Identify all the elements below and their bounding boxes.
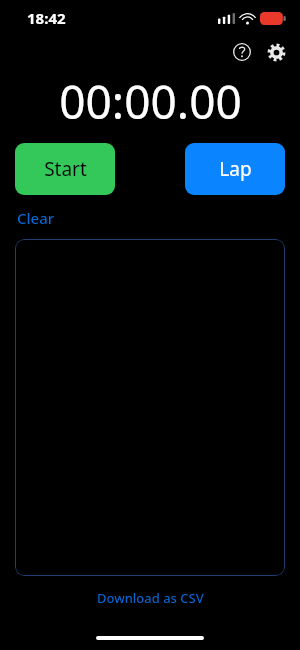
staticText: Download as CSV bbox=[97, 589, 204, 607]
staticText: Lap bbox=[219, 156, 252, 182]
button[interactable]: Clear bbox=[15, 206, 57, 230]
staticText: Clear bbox=[17, 208, 55, 228]
button[interactable]: Lap bbox=[185, 143, 285, 195]
button[interactable]: Start bbox=[15, 143, 115, 195]
button[interactable]: Help bbox=[228, 38, 256, 66]
staticText: Start bbox=[44, 156, 87, 182]
button[interactable]: Settings bbox=[262, 38, 290, 66]
staticText: 00:00.00 bbox=[59, 70, 242, 126]
button[interactable]: Download as CSV bbox=[91, 586, 210, 610]
staticText: 18:42 bbox=[27, 8, 66, 28]
